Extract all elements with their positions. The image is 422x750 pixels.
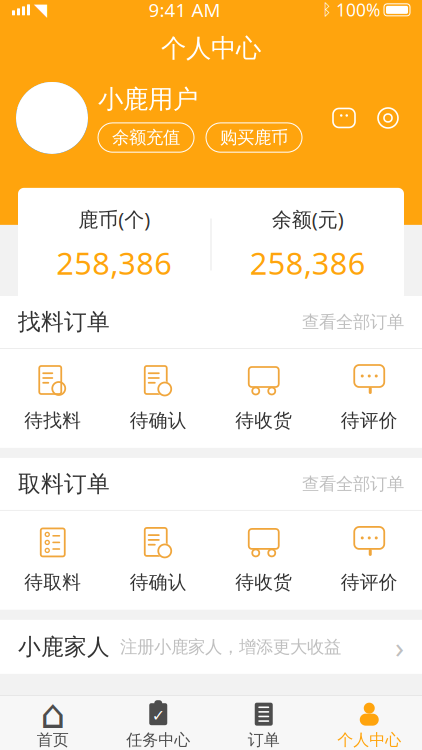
- staticText: 任务中心: [126, 730, 190, 750]
- button[interactable]: 待收货: [211, 511, 316, 610]
- staticText: 取料订单: [18, 470, 110, 498]
- staticText: 100%: [336, 0, 380, 21]
- staticText: 待评价: [341, 571, 398, 594]
- button[interactable]: 个人中心: [316, 696, 422, 750]
- staticText: 小鹿用户: [98, 84, 198, 115]
- button[interactable]: 待评价: [316, 511, 422, 610]
- button[interactable]: ⌂: [0, 696, 105, 750]
- staticText: 待评价: [341, 409, 398, 432]
- button[interactable]: 待找料: [0, 349, 105, 448]
- button[interactable]: 购买鹿币: [206, 123, 302, 152]
- button[interactable]: 待确认: [105, 511, 211, 610]
- staticText: 购买鹿币: [220, 127, 288, 148]
- staticText: 9:41 AM: [148, 0, 220, 22]
- staticText: 待收货: [235, 571, 292, 594]
- staticText: ✓: [152, 707, 165, 725]
- staticText: 找料订单: [18, 308, 110, 336]
- button[interactable]: 查看全部订单: [302, 311, 404, 333]
- button[interactable]: 查看全部订单: [302, 473, 404, 495]
- staticText: 首页: [37, 730, 69, 750]
- button[interactable]: 待评价: [316, 349, 422, 448]
- staticText: 待确认: [130, 571, 187, 594]
- staticText: ›: [395, 627, 404, 666]
- button[interactable]: 余额充值: [98, 123, 194, 152]
- staticText: ⌂: [40, 691, 65, 737]
- staticText: ◥: [34, 0, 47, 20]
- staticText: 待确认: [130, 409, 187, 432]
- button[interactable]: 消息: [330, 104, 358, 132]
- staticText: 订单: [248, 730, 280, 750]
- staticText: 待收货: [235, 409, 292, 432]
- staticText: 小鹿家人: [18, 633, 110, 661]
- button[interactable]: 设置: [374, 104, 402, 132]
- staticText: ᛒ: [322, 2, 332, 18]
- staticText: 258,386: [56, 242, 172, 283]
- staticText: 待找料: [24, 409, 81, 432]
- button[interactable]: 订单: [211, 696, 316, 750]
- staticText: 查看全部订单: [302, 473, 404, 495]
- staticText: 258,386: [250, 242, 366, 283]
- staticText: 鹿币(个): [78, 206, 150, 232]
- staticText: 注册小鹿家人，增添更大收益: [120, 636, 341, 657]
- button[interactable]: 待取料: [0, 511, 105, 610]
- staticText: 查看全部订单: [302, 311, 404, 333]
- staticText: 余额(元): [272, 206, 344, 232]
- button[interactable]: 待确认: [105, 349, 211, 448]
- staticText: 余额充值: [112, 127, 180, 148]
- button[interactable]: ✓: [105, 696, 211, 750]
- staticText: 个人中心: [161, 33, 261, 64]
- button[interactable]: 小鹿家人: [0, 620, 422, 674]
- staticText: 个人中心: [337, 730, 401, 750]
- staticText: 待取料: [24, 571, 81, 594]
- button[interactable]: 待收货: [211, 349, 316, 448]
